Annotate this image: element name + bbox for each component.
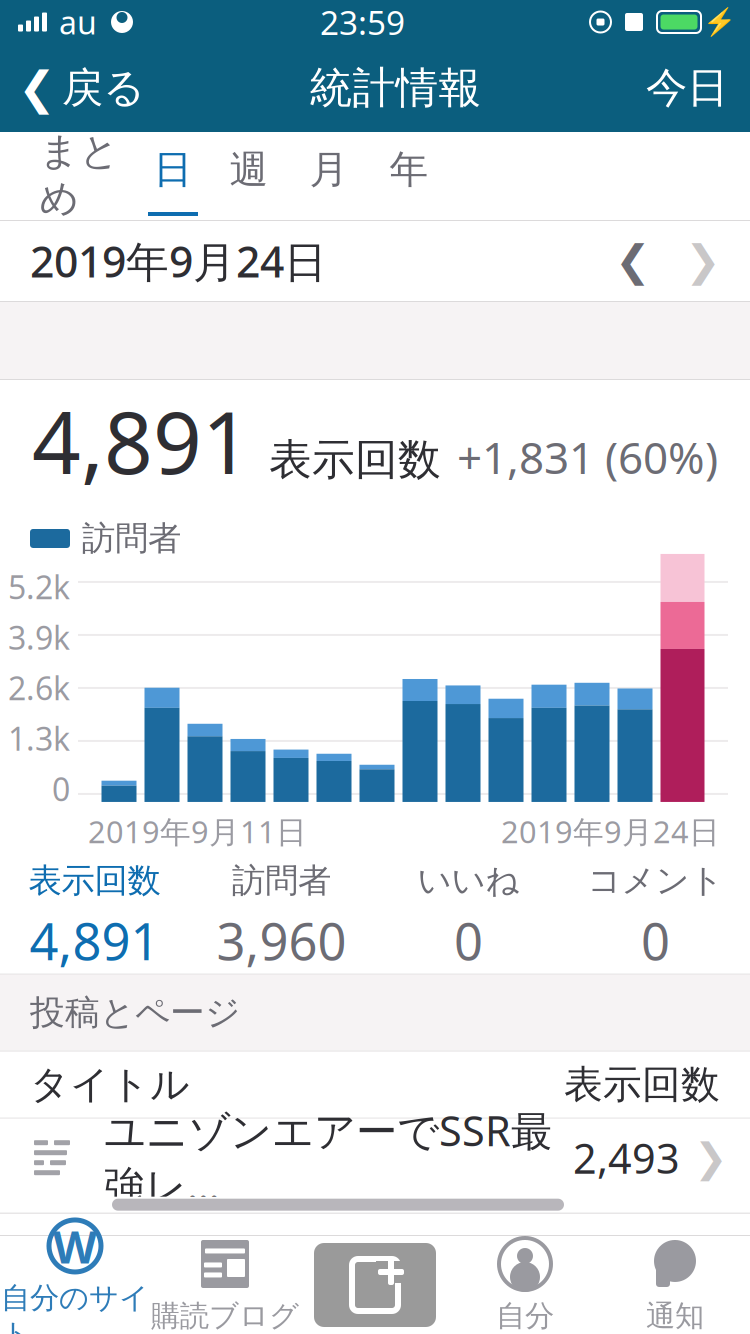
staticText: 年	[389, 146, 428, 193]
staticText: 訪問者	[82, 518, 181, 559]
staticText: 4,891	[32, 384, 251, 498]
staticText: 2019年9月24日	[501, 811, 720, 852]
staticText: +1,831 (60%)	[457, 428, 718, 486]
staticText: まとめ	[39, 127, 119, 222]
staticText: 表示回数	[564, 1061, 720, 1108]
staticText: 2019年9月11日	[88, 811, 307, 852]
staticText: 訪問者	[232, 860, 331, 901]
button[interactable]: 購読ブログ	[150, 1236, 300, 1334]
staticText: ❯	[685, 237, 721, 285]
staticText: ⚡	[703, 7, 736, 37]
staticText: 0	[454, 907, 483, 974]
staticText: 今日	[646, 63, 728, 113]
staticText: 2019年9月24日	[30, 233, 327, 289]
staticText: タイトル	[30, 1061, 190, 1108]
staticText: 通知	[646, 1298, 704, 1334]
staticText: 表示回数	[269, 434, 441, 486]
staticText: ❮	[18, 62, 56, 114]
staticText: W	[53, 1216, 97, 1276]
staticText: 23:59	[320, 0, 405, 44]
staticText: 3.9k	[8, 616, 70, 659]
button[interactable]: 表示回数	[1, 852, 188, 974]
button[interactable]: ❮	[0, 52, 145, 124]
button[interactable]: 訪問者	[188, 852, 375, 974]
button[interactable]: 新規投稿	[300, 1236, 450, 1334]
button[interactable]: 前の日	[598, 221, 668, 301]
staticText: 0	[52, 768, 70, 810]
button[interactable]: 年	[369, 128, 449, 216]
staticText: 自分	[496, 1298, 554, 1334]
staticText: 0	[641, 907, 670, 974]
button[interactable]: 週	[209, 128, 289, 216]
staticText: 統計情報	[309, 62, 481, 114]
staticText: 週	[229, 146, 268, 193]
staticText: 2,493	[573, 1130, 680, 1185]
staticText: 3,960	[216, 907, 346, 974]
button[interactable]: コメント	[562, 852, 749, 974]
button[interactable]: いいね	[375, 852, 562, 974]
staticText: au	[59, 1, 97, 43]
button[interactable]: 月	[289, 128, 369, 216]
button[interactable]: W	[0, 1236, 150, 1334]
staticText: いいね	[417, 860, 519, 901]
button[interactable]: ユニゾンエアーでSSR最強レ…	[0, 1119, 750, 1197]
staticText: 1.3k	[8, 717, 70, 760]
staticText: ユニゾンエアーでSSR最強レ…	[104, 1103, 552, 1213]
staticText: 購読ブログ	[151, 1298, 299, 1334]
staticText: ❯	[694, 1135, 728, 1180]
staticText: 日	[153, 146, 192, 193]
button[interactable]: 自分	[450, 1236, 600, 1334]
staticText: 2.6k	[8, 667, 70, 709]
button[interactable]: 次の日	[668, 221, 738, 301]
staticText: 表示回数	[28, 860, 160, 901]
button[interactable]: 通知	[600, 1236, 750, 1334]
staticText: 戻る	[62, 63, 145, 113]
staticText: 5.2k	[8, 566, 70, 608]
button[interactable]: まとめ	[22, 128, 137, 216]
button[interactable]: 今日	[646, 53, 750, 123]
staticText: 月	[309, 146, 348, 193]
staticText: 自分のサイト	[1, 1280, 149, 1334]
staticText: 4,891	[29, 907, 159, 974]
staticText: ❮	[615, 237, 651, 285]
button[interactable]: 日	[137, 128, 209, 216]
staticText: 投稿とページ	[30, 991, 240, 1034]
staticText: コメント	[587, 860, 723, 901]
